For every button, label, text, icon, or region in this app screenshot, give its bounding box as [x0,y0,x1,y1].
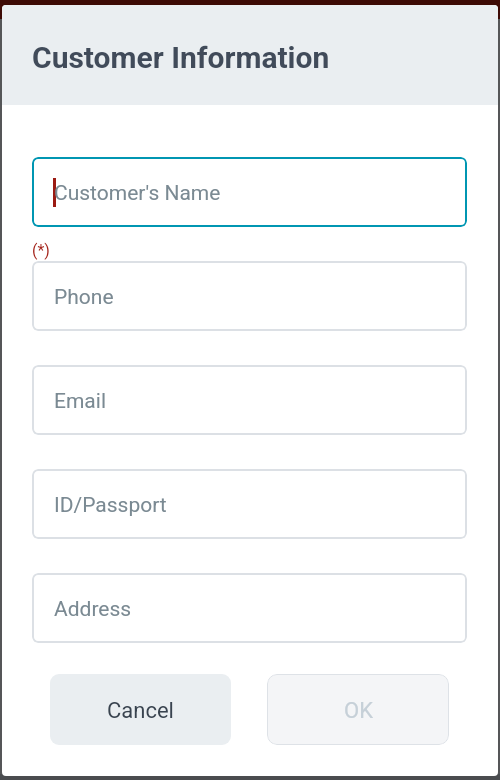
staticText: Customer's Name [54,181,221,206]
button[interactable]: Phone [32,261,467,331]
staticText: Customer Information [32,40,330,75]
staticText: (*) [32,241,50,260]
button[interactable]: ID/Passport [32,469,467,539]
staticText: Cancel [107,698,174,724]
staticText: Phone [54,285,114,310]
button[interactable]: Cancel [50,674,231,745]
button[interactable]: Customer's Name [32,157,467,227]
staticText: ID/Passport [54,493,167,518]
staticText: Address [54,597,132,622]
staticText: OK [344,698,373,724]
button[interactable]: OK [267,674,449,745]
staticText: Email [54,389,106,414]
button[interactable]: Email [32,365,467,435]
button[interactable]: Address [32,573,467,643]
